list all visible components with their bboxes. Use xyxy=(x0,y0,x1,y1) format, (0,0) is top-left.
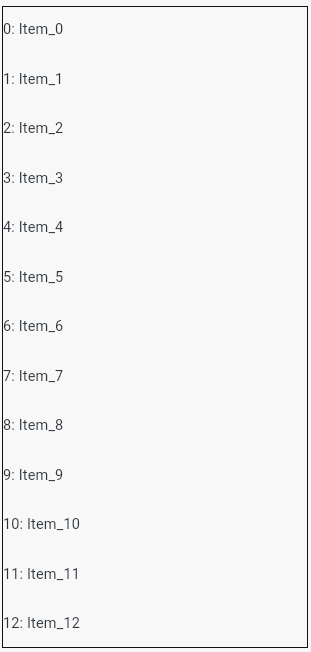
staticText: 10: Item_10 xyxy=(3,516,80,533)
button[interactable]: 0: Item_0 xyxy=(2,6,308,56)
button[interactable]: 6: Item_6 xyxy=(2,303,308,353)
staticText: 0: Item_0 xyxy=(3,21,64,38)
staticText: 1: Item_1 xyxy=(3,71,64,88)
button[interactable]: 3: Item_3 xyxy=(2,155,308,205)
button[interactable]: 5: Item_5 xyxy=(2,254,308,304)
button[interactable]: 10: Item_10 xyxy=(2,501,308,551)
staticText: 11: Item_11 xyxy=(3,566,80,583)
button[interactable]: 12: Item_12 xyxy=(2,600,308,650)
staticText: 6: Item_6 xyxy=(3,318,64,335)
button[interactable]: 8: Item_8 xyxy=(2,402,308,452)
staticText: 3: Item_3 xyxy=(3,170,64,187)
staticText: 5: Item_5 xyxy=(3,269,64,286)
staticText: 4: Item_4 xyxy=(3,219,64,236)
staticText: 2: Item_2 xyxy=(3,120,64,137)
button[interactable]: 11: Item_11 xyxy=(2,551,308,601)
staticText: 12: Item_12 xyxy=(3,615,80,632)
button[interactable]: 1: Item_1 xyxy=(2,56,308,106)
button[interactable]: 7: Item_7 xyxy=(2,353,308,403)
button[interactable]: 9: Item_9 xyxy=(2,452,308,502)
staticText: 8: Item_8 xyxy=(3,417,64,434)
staticText: 9: Item_9 xyxy=(3,467,64,484)
button[interactable]: 4: Item_4 xyxy=(2,204,308,254)
staticText: 7: Item_7 xyxy=(3,368,64,385)
button[interactable]: 2: Item_2 xyxy=(2,105,308,155)
